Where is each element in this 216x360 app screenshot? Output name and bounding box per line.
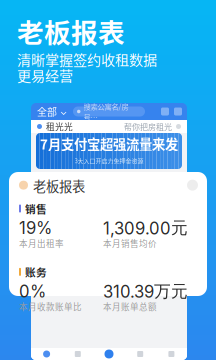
staticText: 7月支付宝超强流量来发 (40, 134, 178, 153)
staticText: 搜索公寓名/房号… (83, 101, 128, 122)
staticText: ⌄ (60, 106, 67, 117)
staticText: 租光光 (46, 120, 73, 133)
staticText: 本月账单总额 (109, 242, 151, 252)
staticText: 老板报表 (17, 12, 125, 50)
staticText: 清晰掌握签约收租数据 (17, 49, 157, 69)
staticText: 销售 (25, 201, 47, 216)
staticText: 19% (19, 218, 52, 238)
button[interactable]: Tab 3 (93, 348, 125, 360)
button[interactable]: Tab 1 (31, 348, 62, 360)
staticText: 310.39万元 (109, 204, 170, 241)
button[interactable]: Tab 2 (62, 348, 93, 360)
staticText: 更易经营 (17, 65, 73, 85)
staticText: 账务 (48, 187, 66, 199)
staticText: 帮你把房租光 (124, 121, 172, 132)
staticText: 0% (43, 213, 70, 233)
staticText: 1,309.00元 (103, 217, 188, 238)
staticText: 310.39万元 (103, 281, 188, 302)
staticText: 本月收款账单比 (43, 234, 92, 243)
staticText: 本月账单总额 (103, 300, 157, 313)
staticText: 3大入口开启力免押金资源 (74, 156, 143, 165)
button[interactable]: Tab 4 (125, 348, 156, 360)
staticText: 老板报表 (33, 176, 85, 195)
staticText: 本月销售均价 (103, 237, 157, 249)
staticText: 账务 (25, 264, 47, 279)
staticText: 本月出租率 (19, 237, 64, 249)
staticText: 全部 (37, 104, 57, 119)
button[interactable]: Tab 5 (156, 348, 187, 360)
staticText: 本月收款账单比 (19, 300, 82, 313)
staticText: 0% (19, 281, 46, 301)
